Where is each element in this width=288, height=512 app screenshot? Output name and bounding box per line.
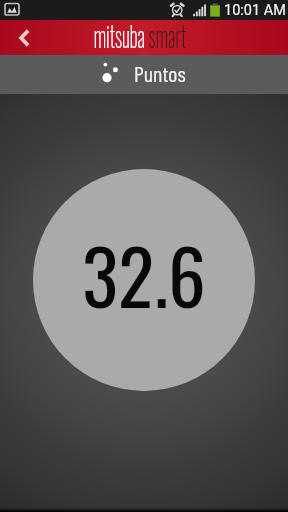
- staticText: 10:01 AM: [224, 2, 286, 19]
- staticText: mitsuba smart: [94, 14, 186, 49]
- button[interactable]: 32.6: [33, 169, 255, 391]
- staticText: 32.6: [82, 219, 206, 330]
- button[interactable]: Back: [0, 20, 46, 55]
- button[interactable]: Puntos: [0, 55, 288, 94]
- staticText: Puntos: [134, 60, 186, 86]
